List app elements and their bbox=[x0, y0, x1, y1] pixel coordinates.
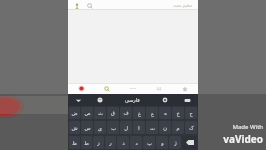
button[interactable]: و bbox=[156, 136, 168, 149]
button[interactable]: ن bbox=[159, 121, 171, 134]
button[interactable]: Voice input bbox=[72, 1, 81, 10]
button[interactable]: ش bbox=[69, 121, 80, 134]
button[interactable]: غ bbox=[133, 107, 145, 119]
button[interactable]: People bbox=[146, 83, 172, 94]
button[interactable]: Home bbox=[172, 83, 198, 94]
staticText: ض bbox=[71, 110, 78, 116]
staticText: ص bbox=[84, 110, 91, 116]
button[interactable]: ق bbox=[107, 107, 119, 119]
staticText: تنظیم مجدد bbox=[172, 3, 192, 8]
button[interactable]: Search bbox=[94, 83, 120, 94]
staticText: فارسی bbox=[125, 97, 140, 103]
staticText: ش bbox=[71, 125, 78, 131]
button[interactable]: Backspace bbox=[182, 136, 197, 149]
button[interactable]: ف bbox=[120, 107, 132, 119]
staticText: ت bbox=[150, 125, 155, 131]
staticText: ظ bbox=[72, 140, 77, 146]
button[interactable]: خ bbox=[172, 107, 184, 119]
button[interactable]: ک bbox=[185, 121, 197, 134]
staticText: ک bbox=[189, 125, 194, 131]
button[interactable]: ا bbox=[133, 121, 145, 134]
button[interactable]: Settings bbox=[154, 94, 176, 106]
staticText: ق bbox=[111, 110, 115, 116]
button[interactable]: Record bbox=[68, 83, 94, 94]
button[interactable]: ض bbox=[69, 107, 80, 119]
staticText: ف bbox=[123, 110, 129, 116]
staticText: پ bbox=[147, 140, 152, 146]
button[interactable]: ب bbox=[107, 121, 119, 134]
staticText: ی bbox=[98, 125, 102, 131]
staticText: ع bbox=[151, 110, 154, 116]
staticText: ث bbox=[98, 110, 103, 116]
button[interactable]: Grid bbox=[120, 83, 146, 94]
button[interactable]: ت bbox=[146, 121, 158, 134]
staticText: ز bbox=[97, 140, 100, 146]
staticText: ن bbox=[163, 125, 167, 131]
button[interactable]: د bbox=[130, 136, 142, 149]
staticText: س bbox=[84, 125, 91, 131]
staticText: ل bbox=[124, 125, 128, 131]
button[interactable]: Clipboard bbox=[176, 94, 198, 106]
staticText: ا bbox=[138, 125, 140, 131]
button[interactable]: ر bbox=[105, 136, 116, 149]
button[interactable]: ع bbox=[146, 107, 158, 119]
staticText: ژ bbox=[174, 140, 177, 146]
button[interactable]: ظ bbox=[69, 136, 80, 149]
button[interactable]: ث bbox=[94, 107, 106, 119]
button[interactable]: ی bbox=[94, 121, 106, 134]
button[interactable]: ص bbox=[81, 107, 93, 119]
button[interactable]: Emoji bbox=[89, 94, 111, 106]
staticText: و bbox=[161, 140, 164, 146]
staticText: ح bbox=[189, 110, 193, 116]
staticText: ط bbox=[84, 140, 89, 146]
staticText: د bbox=[135, 140, 138, 146]
button[interactable]: ه bbox=[159, 107, 171, 119]
staticText: ب bbox=[111, 125, 116, 131]
button[interactable]: ذ bbox=[117, 136, 129, 149]
staticText: Made With bbox=[232, 123, 263, 131]
button[interactable]: ژ bbox=[169, 136, 181, 149]
staticText: م bbox=[176, 125, 180, 131]
staticText: غ bbox=[138, 110, 141, 116]
button[interactable]: فارسی bbox=[111, 94, 154, 106]
button[interactable]: م bbox=[172, 121, 184, 134]
button[interactable]: Collapse keyboard bbox=[68, 94, 89, 106]
button[interactable]: ح bbox=[185, 107, 197, 119]
staticText: خ bbox=[176, 110, 180, 116]
button[interactable]: ز bbox=[93, 136, 104, 149]
button[interactable]: پ bbox=[143, 136, 155, 149]
button[interactable]: ل bbox=[120, 121, 132, 134]
staticText: ر bbox=[109, 140, 112, 146]
button[interactable]: س bbox=[81, 121, 93, 134]
staticText: ذ bbox=[122, 140, 125, 146]
button[interactable]: Search bbox=[85, 1, 94, 10]
staticText: vaVideo bbox=[223, 132, 263, 146]
button[interactable]: ط bbox=[81, 136, 92, 149]
staticText: ه bbox=[164, 110, 167, 116]
